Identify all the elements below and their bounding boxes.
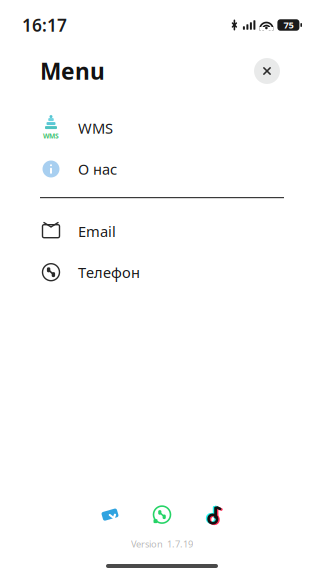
staticText: Version 1.7.19	[131, 538, 193, 550]
button[interactable]: Close	[250, 54, 284, 88]
staticText: 75	[283, 19, 293, 31]
staticText: Телефон	[78, 262, 140, 282]
button[interactable]: Телефон	[0, 252, 324, 292]
staticText: Email	[78, 221, 116, 241]
staticText: О нас	[78, 159, 117, 179]
staticText: WMS	[78, 118, 113, 138]
button[interactable]: Telegram	[95, 500, 125, 530]
staticText: Menu	[40, 56, 105, 86]
button[interactable]: Email	[0, 211, 324, 251]
button[interactable]: TikTok	[199, 500, 229, 530]
button[interactable]: WhatsApp	[147, 500, 177, 530]
staticText: 16:17	[22, 13, 67, 36]
staticText: WMS	[43, 132, 59, 140]
button[interactable]: WMS	[0, 108, 324, 148]
button[interactable]: О нас	[0, 149, 324, 189]
